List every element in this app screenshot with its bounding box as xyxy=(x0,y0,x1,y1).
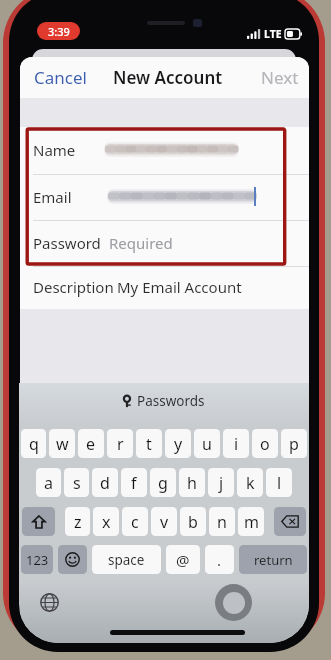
button[interactable]: u xyxy=(194,429,220,458)
button[interactable]: . xyxy=(205,545,234,574)
button[interactable]: Switch keyboard xyxy=(38,591,60,613)
staticText: Cancel xyxy=(34,66,87,89)
button[interactable]: m xyxy=(238,507,264,536)
button[interactable]: d xyxy=(92,468,118,497)
button[interactable]: i xyxy=(223,429,249,458)
staticText: 3:39 xyxy=(48,24,70,39)
button[interactable]: n xyxy=(209,507,235,536)
button[interactable]: p xyxy=(281,429,307,458)
button[interactable]: Emoji xyxy=(58,545,87,574)
staticText: d xyxy=(100,472,110,494)
button[interactable]: g xyxy=(150,468,176,497)
button[interactable]: Backspace xyxy=(274,507,306,536)
staticText: g xyxy=(158,472,168,494)
staticText: return xyxy=(254,551,293,569)
staticText: b xyxy=(188,511,198,533)
button[interactable]: Shift xyxy=(22,507,55,536)
button[interactable]: r xyxy=(107,429,133,458)
staticText: c xyxy=(131,511,139,533)
button[interactable]: s xyxy=(64,468,89,497)
button[interactable]: b xyxy=(180,507,206,536)
button[interactable]: o xyxy=(252,429,278,458)
staticText: Email xyxy=(33,187,72,207)
staticText: . xyxy=(217,550,222,570)
button[interactable]: Next xyxy=(251,58,309,97)
staticText: w xyxy=(56,433,69,455)
staticText: j xyxy=(219,472,224,494)
button[interactable]: j xyxy=(208,468,234,497)
button[interactable]: Dictation xyxy=(215,584,252,621)
button[interactable]: l xyxy=(266,468,292,497)
button[interactable]: a xyxy=(36,468,61,497)
button[interactable]: Name xyxy=(20,127,309,174)
staticText: Next xyxy=(261,66,299,89)
staticText: q xyxy=(29,433,39,455)
staticText: @ xyxy=(176,550,190,570)
button[interactable]: @ xyxy=(166,545,200,574)
staticText: i xyxy=(234,433,239,455)
staticText: e xyxy=(86,433,96,455)
button[interactable]: w xyxy=(49,429,75,458)
staticText: v xyxy=(160,511,169,533)
staticText: Passwords xyxy=(137,392,205,410)
staticText: p xyxy=(289,433,299,455)
staticText: m xyxy=(244,511,259,533)
staticText: t xyxy=(146,433,152,455)
staticText: k xyxy=(246,472,255,494)
staticText: x xyxy=(102,511,111,533)
staticText: f xyxy=(131,472,137,494)
staticText: h xyxy=(187,472,197,494)
staticText: Description xyxy=(33,277,114,297)
button[interactable]: k xyxy=(237,468,263,497)
button[interactable]: x xyxy=(93,507,119,536)
staticText: y xyxy=(174,433,183,455)
staticText: Name xyxy=(33,140,76,160)
staticText: Required xyxy=(109,233,173,253)
button[interactable]: return xyxy=(239,545,307,574)
staticText: New Account xyxy=(113,66,223,89)
staticText: s xyxy=(73,472,81,494)
button[interactable]: Email xyxy=(20,175,309,220)
staticText: 123 xyxy=(26,551,49,569)
button[interactable]: z xyxy=(65,507,90,536)
button[interactable]: Cancel xyxy=(20,58,97,97)
staticText: LTE xyxy=(264,27,282,41)
button[interactable]: c xyxy=(122,507,148,536)
button[interactable]: v xyxy=(151,507,177,536)
button[interactable]: e xyxy=(78,429,104,458)
button[interactable]: space xyxy=(92,545,161,574)
staticText: Password xyxy=(33,233,101,253)
button[interactable]: Passwords xyxy=(123,392,205,410)
staticText: z xyxy=(74,511,82,533)
staticText: o xyxy=(260,433,270,455)
staticText: space xyxy=(108,551,145,569)
staticText: r xyxy=(117,433,124,455)
button[interactable]: y xyxy=(165,429,191,458)
button[interactable]: f xyxy=(121,468,147,497)
button[interactable]: h xyxy=(179,468,205,497)
button[interactable]: q xyxy=(21,429,46,458)
staticText: n xyxy=(217,511,227,533)
staticText: l xyxy=(277,472,282,494)
button[interactable]: Password xyxy=(20,221,309,266)
staticText: u xyxy=(202,433,212,455)
button[interactable]: t xyxy=(136,429,162,458)
staticText: My Email Account xyxy=(117,277,242,297)
button[interactable]: 123 xyxy=(21,545,53,574)
staticText: a xyxy=(44,472,53,494)
button[interactable]: Description xyxy=(20,267,309,309)
